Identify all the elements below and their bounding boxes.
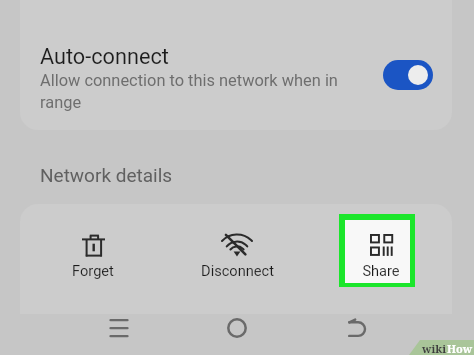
button[interactable]: Forget <box>41 226 145 284</box>
button[interactable]: Back <box>332 304 380 352</box>
staticText: wiki <box>422 341 447 355</box>
staticText: How <box>447 341 473 355</box>
button[interactable]: Auto-connect toggle <box>383 60 433 90</box>
button[interactable]: Recent apps <box>95 304 143 352</box>
button[interactable]: Disconnect <box>185 226 289 284</box>
staticText: Network details <box>40 164 173 186</box>
staticText: Allow connection to this network when in… <box>40 71 342 112</box>
staticText: Share <box>362 262 400 279</box>
staticText: Forget <box>72 262 114 279</box>
staticText: Auto-connect <box>40 44 169 69</box>
staticText: Disconnect <box>201 262 274 279</box>
button[interactable]: Auto-connect <box>20 0 452 130</box>
button[interactable]: Home <box>213 304 261 352</box>
button[interactable]: Share <box>329 226 433 284</box>
